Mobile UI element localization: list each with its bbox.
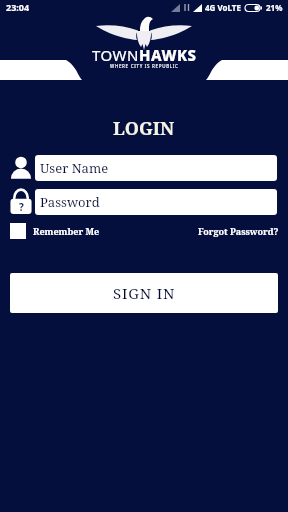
- staticText: Remember Me: [33, 225, 100, 237]
- staticText: WHERE CITY IS REPUBLIC: [110, 63, 179, 69]
- button[interactable]: User Name: [35, 155, 277, 181]
- staticText: LOGIN: [113, 116, 175, 141]
- staticText: 21%: [266, 2, 283, 13]
- button[interactable]: Password: [35, 189, 277, 215]
- staticText: 23:04: [6, 1, 30, 13]
- staticText: 4G VoLTE: [205, 2, 241, 13]
- button[interactable]: SIGN IN: [10, 273, 278, 313]
- staticText: User Name: [40, 159, 109, 177]
- button[interactable]: Forgot Password?: [198, 225, 279, 237]
- staticText: ?: [19, 200, 24, 214]
- button[interactable]: Remember Me: [10, 223, 100, 239]
- staticText: SIGN IN: [113, 283, 176, 303]
- staticText: Password: [40, 193, 100, 211]
- staticText: TOWNHAWKS: [92, 45, 197, 65]
